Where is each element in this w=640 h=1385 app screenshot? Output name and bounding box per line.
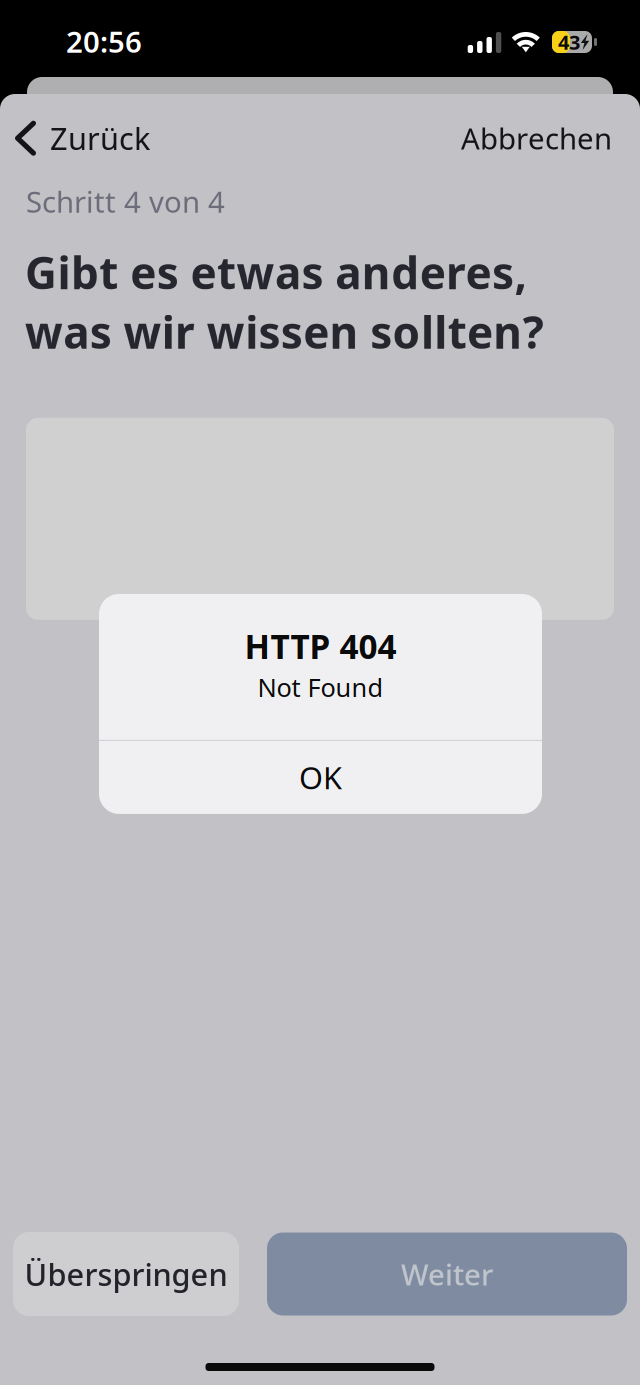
staticText: Weiter bbox=[401, 1254, 493, 1293]
staticText: Not Found bbox=[257, 670, 383, 704]
staticText: 20:56 bbox=[66, 22, 142, 61]
staticText: HTTP 404 bbox=[244, 624, 396, 668]
staticText: was wir wissen sollten? bbox=[25, 302, 544, 361]
staticText: OK bbox=[299, 757, 342, 798]
staticText: Zurück bbox=[50, 118, 150, 158]
staticText: Abbrechen bbox=[461, 118, 612, 157]
button[interactable]: Abbrechen bbox=[447, 94, 626, 182]
staticText: Gibt es etwas anderes, bbox=[25, 243, 527, 301]
staticText: Schritt 4 von 4 bbox=[26, 182, 225, 221]
staticText: Überspringen bbox=[24, 1254, 227, 1294]
button[interactable]: Zurück bbox=[0, 94, 162, 182]
button[interactable]: OK bbox=[99, 741, 542, 814]
staticText: 43 bbox=[558, 29, 580, 55]
button[interactable]: Überspringen bbox=[13, 1232, 239, 1316]
button[interactable]: Weiter bbox=[267, 1232, 627, 1315]
